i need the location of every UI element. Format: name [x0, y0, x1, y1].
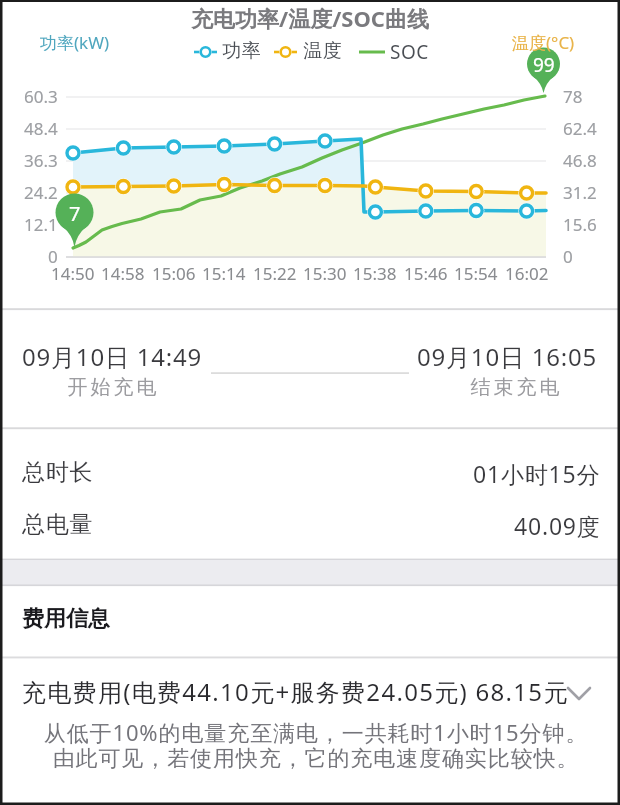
staticText: 从低于10%的电量充至满电，一共耗时1小时15分钟。 — [12, 717, 620, 747]
staticText: 09月10日 16:05 — [417, 340, 598, 373]
staticText: 31.2 — [563, 181, 597, 204]
staticText: 60.3 — [24, 85, 58, 108]
staticText: 14:50 — [51, 262, 95, 285]
button[interactable]: 总电量 — [22, 510, 601, 541]
staticText: 温度 — [303, 39, 342, 63]
staticText: 24.2 — [24, 181, 58, 204]
staticText: 78 — [563, 85, 583, 108]
staticText: SOC — [390, 39, 429, 65]
staticText: 16:02 — [505, 262, 549, 285]
staticText: 费用信息 — [22, 605, 110, 633]
staticText: 99 — [533, 52, 555, 78]
staticText: 功率(kW) — [40, 31, 110, 54]
button[interactable]: 总时长 — [22, 458, 601, 489]
staticText: 46.8 — [563, 149, 597, 172]
staticText: 充电费用(电费44.10元+服务费24.05元) 68.15元 — [22, 675, 569, 708]
staticText: 15:46 — [404, 262, 448, 285]
staticText: 0 — [563, 245, 573, 268]
staticText: 40.09度 — [514, 510, 601, 541]
staticText: 15:22 — [253, 262, 297, 285]
staticText: 15:14 — [202, 262, 246, 285]
staticText: 01小时15分 — [473, 458, 601, 489]
staticText: 由此可见，若使用快充，它的充电速度确实比较快。 — [12, 745, 620, 773]
staticText: 功率 — [222, 39, 261, 63]
staticText: 12.1 — [24, 213, 58, 236]
staticText: 15:38 — [353, 262, 397, 285]
staticText: 总电量 — [22, 510, 94, 539]
staticText: 15:06 — [152, 262, 196, 285]
staticText: 48.4 — [24, 117, 58, 140]
staticText: 14:58 — [101, 262, 145, 285]
staticText: 15:30 — [303, 262, 347, 285]
staticText: 充电功率/温度/SOC曲线 — [0, 3, 620, 33]
staticText: 温度(°C) — [512, 31, 575, 54]
staticText: 09月10日 14:49 — [22, 340, 203, 373]
staticText: 开始充电 — [66, 375, 158, 400]
staticText: 15.6 — [563, 213, 597, 236]
staticText: 结束充电 — [469, 375, 561, 400]
staticText: 36.3 — [24, 149, 58, 172]
staticText: 0 — [48, 245, 58, 268]
staticText: 15:54 — [454, 262, 498, 285]
staticText: 62.4 — [563, 117, 597, 140]
staticText: 7 — [69, 200, 81, 227]
button[interactable]: 充电费用(电费44.10元+服务费24.05元) 68.15元 — [0, 675, 620, 709]
staticText: 总时长 — [22, 458, 94, 487]
